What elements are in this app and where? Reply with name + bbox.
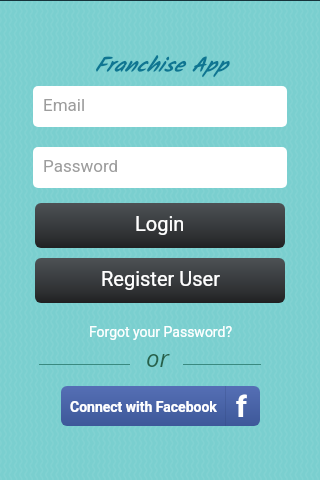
staticText: Connect with Facebook — [70, 399, 217, 415]
staticText: Email — [43, 95, 86, 115]
staticText: Password — [43, 156, 119, 176]
staticText: or — [146, 341, 169, 374]
button[interactable]: Email — [33, 86, 287, 127]
button[interactable]: Connect with Facebook — [61, 386, 260, 426]
staticText: f — [236, 389, 247, 424]
button[interactable]: Password — [33, 147, 287, 188]
staticText: Franchise App — [94, 50, 227, 83]
button[interactable]: Login — [35, 203, 285, 248]
staticText: Login — [135, 212, 185, 235]
button[interactable]: Register User — [35, 258, 285, 303]
button[interactable]: Forgot your Password? — [89, 324, 232, 340]
other: Facebook — [226, 386, 260, 426]
staticText: Register User — [101, 267, 220, 290]
